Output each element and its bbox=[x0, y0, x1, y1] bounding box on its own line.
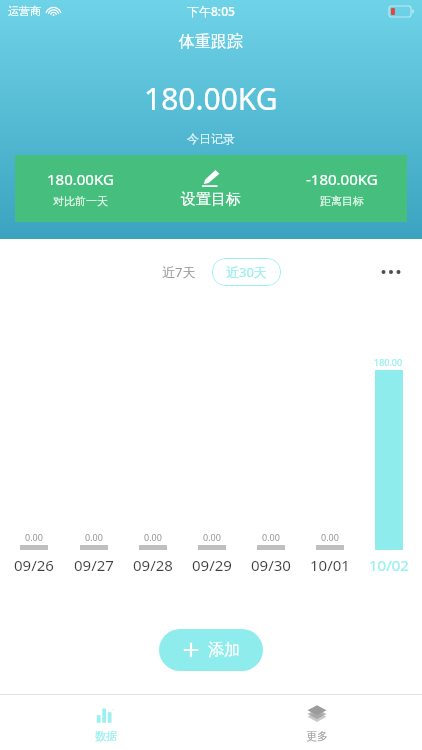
staticText: 10/02 bbox=[369, 555, 409, 575]
staticText: 设置目标 bbox=[181, 190, 241, 209]
staticText: 09/26 bbox=[14, 555, 54, 575]
button[interactable]: 0.00 bbox=[182, 315, 241, 575]
button[interactable]: 更多选项 bbox=[376, 257, 406, 287]
staticText: 0.00 bbox=[321, 531, 339, 543]
button[interactable]: 0.00 bbox=[4, 315, 64, 575]
button[interactable]: 180.00KG bbox=[15, 155, 145, 222]
other: 设置目标 bbox=[201, 169, 221, 187]
staticText: 09/27 bbox=[74, 555, 114, 575]
staticText: 180.00KG bbox=[144, 78, 278, 119]
staticText: 0.00 bbox=[25, 531, 43, 543]
button[interactable]: -180.00KG bbox=[276, 155, 407, 222]
staticText: 对比前一天 bbox=[53, 194, 108, 208]
staticText: 09/28 bbox=[133, 555, 173, 575]
staticText: 180.00 bbox=[374, 356, 403, 368]
staticText: 180.00KG bbox=[47, 169, 114, 189]
button[interactable]: 0.00 bbox=[64, 315, 123, 575]
staticText: 体重跟踪 bbox=[179, 32, 243, 52]
staticText: 近30天 bbox=[226, 263, 267, 281]
staticText: 0.00 bbox=[203, 531, 221, 543]
staticText: 09/30 bbox=[251, 555, 291, 575]
staticText: 0.00 bbox=[144, 531, 162, 543]
staticText: 今日记录 bbox=[187, 131, 235, 146]
button[interactable]: 近30天 bbox=[212, 258, 281, 286]
button[interactable]: 更多 bbox=[211, 695, 422, 750]
staticText: 09/29 bbox=[192, 555, 232, 575]
button[interactable]: 设置目标 bbox=[145, 155, 276, 222]
staticText: 添加 bbox=[208, 640, 240, 660]
button[interactable]: 180.00 bbox=[359, 315, 418, 575]
staticText: 0.00 bbox=[262, 531, 280, 543]
button[interactable]: 0.00 bbox=[123, 315, 182, 575]
staticText: 0.00 bbox=[85, 531, 103, 543]
staticText: 距离目标 bbox=[320, 194, 364, 208]
staticText: 下午8:05 bbox=[187, 3, 235, 19]
staticText: 更多 bbox=[306, 729, 328, 743]
button[interactable]: 0.00 bbox=[300, 315, 359, 575]
staticText: 近7天 bbox=[162, 263, 196, 281]
button[interactable]: 数据 bbox=[0, 695, 211, 750]
staticText: 数据 bbox=[95, 729, 117, 743]
staticText: 运营商 bbox=[8, 4, 41, 18]
staticText: 10/01 bbox=[310, 555, 350, 575]
button[interactable]: 添加 bbox=[159, 629, 263, 671]
button[interactable]: 0.00 bbox=[241, 315, 300, 575]
button[interactable]: 近7天 bbox=[156, 259, 202, 285]
staticText: -180.00KG bbox=[306, 169, 378, 189]
